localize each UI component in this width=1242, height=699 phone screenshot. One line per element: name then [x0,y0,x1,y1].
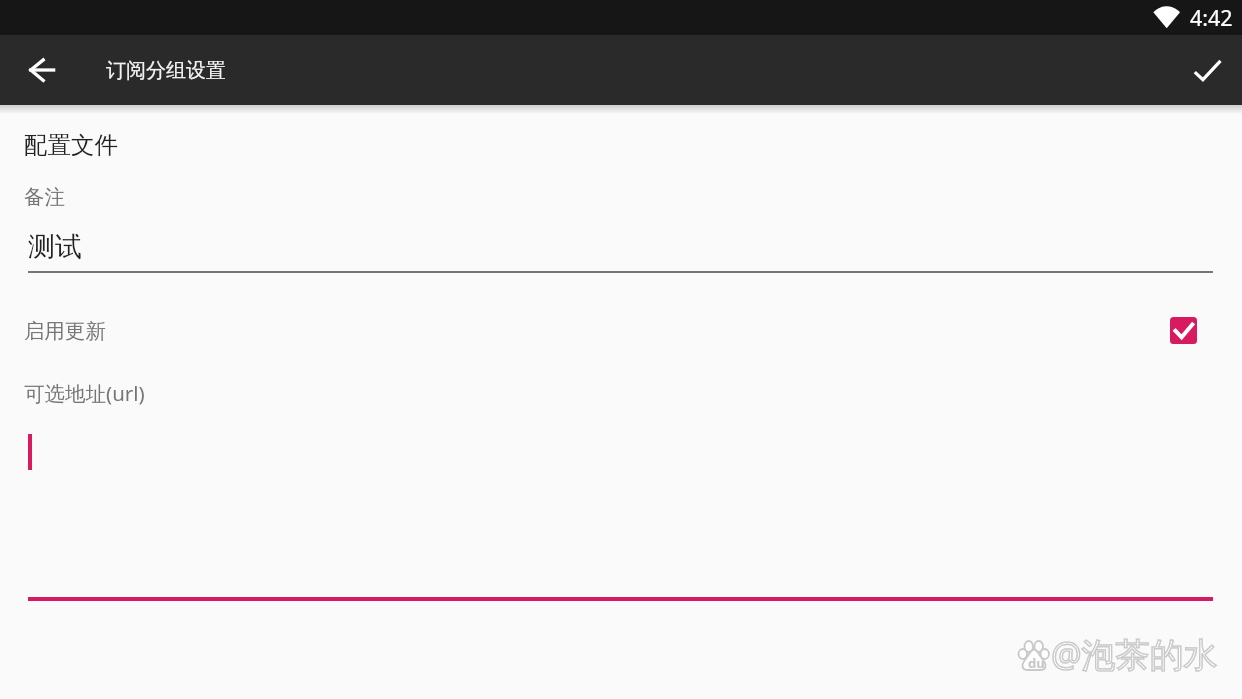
staticText: 配置文件 [24,130,118,160]
button[interactable]: 可选地址(url) [16,366,1226,606]
staticText: 测试 [28,230,82,264]
button[interactable]: 备注 [16,170,1226,278]
button[interactable]: Done [1173,36,1242,105]
staticText: @泡茶的水 [1051,631,1218,677]
staticText: 启用更新 [24,318,106,344]
staticText: @泡茶的水 [1051,631,1218,677]
staticText: 备注 [24,184,65,210]
staticText: 订阅分组设置 [106,58,226,83]
staticText: 可选地址(url) [24,379,145,407]
button[interactable]: Back [7,35,75,104]
button[interactable]: 启用更新 [0,302,1242,360]
button[interactable]: 启用更新 [1170,317,1197,344]
staticText: 4:42 [1190,3,1233,32]
staticText: du [1028,654,1045,672]
